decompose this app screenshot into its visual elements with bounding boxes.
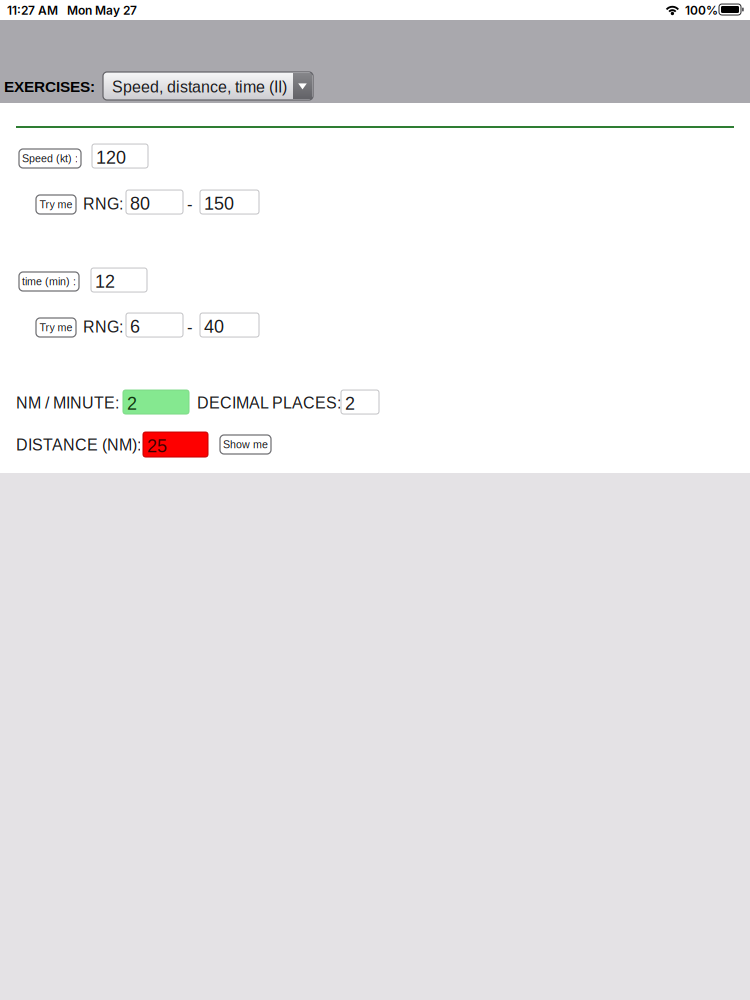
button[interactable]: Speed in knots [92, 144, 148, 168]
button[interactable]: NM per minute [123, 390, 189, 414]
staticText: time (min) : [22, 275, 76, 287]
staticText: - [187, 318, 193, 337]
staticText: DECIMAL PLACES: [197, 394, 341, 412]
staticText: Speed, distance, time (II) [112, 78, 287, 96]
button[interactable]: Try me [36, 318, 76, 337]
staticText: Try me [39, 198, 72, 210]
staticText: 2 [345, 394, 355, 414]
staticText: 80 [130, 194, 150, 214]
button[interactable]: Time range maximum [200, 313, 259, 337]
staticText: 100% [685, 3, 718, 17]
staticText: EXERCISES: [4, 78, 95, 95]
button[interactable]: Speed (kt) : [19, 149, 81, 168]
staticText: 25 [147, 436, 167, 456]
button[interactable]: Decimal places [341, 390, 379, 414]
staticText: RNG: [83, 318, 123, 336]
staticText: 120 [96, 148, 126, 168]
staticText: 11:27 AM [7, 3, 58, 17]
button[interactable]: Time in minutes [91, 268, 147, 292]
staticText: Show me [223, 438, 268, 450]
staticText: 40 [204, 317, 224, 337]
button[interactable]: Speed range minimum [126, 190, 183, 214]
button[interactable]: Try me [36, 195, 76, 214]
button[interactable]: Show me [220, 435, 271, 454]
staticText: Try me [39, 321, 72, 333]
staticText: 6 [130, 317, 140, 337]
button[interactable]: Distance in nautical miles [143, 432, 208, 457]
button[interactable]: time (min) : [19, 272, 79, 291]
staticText: - [187, 195, 193, 214]
staticText: 2 [127, 394, 137, 414]
staticText: Mon May 27 [67, 3, 137, 17]
staticText: Speed (kt) : [22, 152, 78, 164]
staticText: 150 [204, 194, 234, 214]
button[interactable]: Time range minimum [126, 313, 183, 337]
staticText: DISTANCE (NM): [16, 436, 141, 454]
staticText: RNG: [83, 195, 123, 213]
staticText: 12 [95, 272, 115, 292]
button[interactable]: Speed range maximum [200, 190, 259, 214]
staticText: NM / MINUTE: [16, 394, 119, 412]
button[interactable]: Speed, distance, time (II) [103, 72, 313, 100]
